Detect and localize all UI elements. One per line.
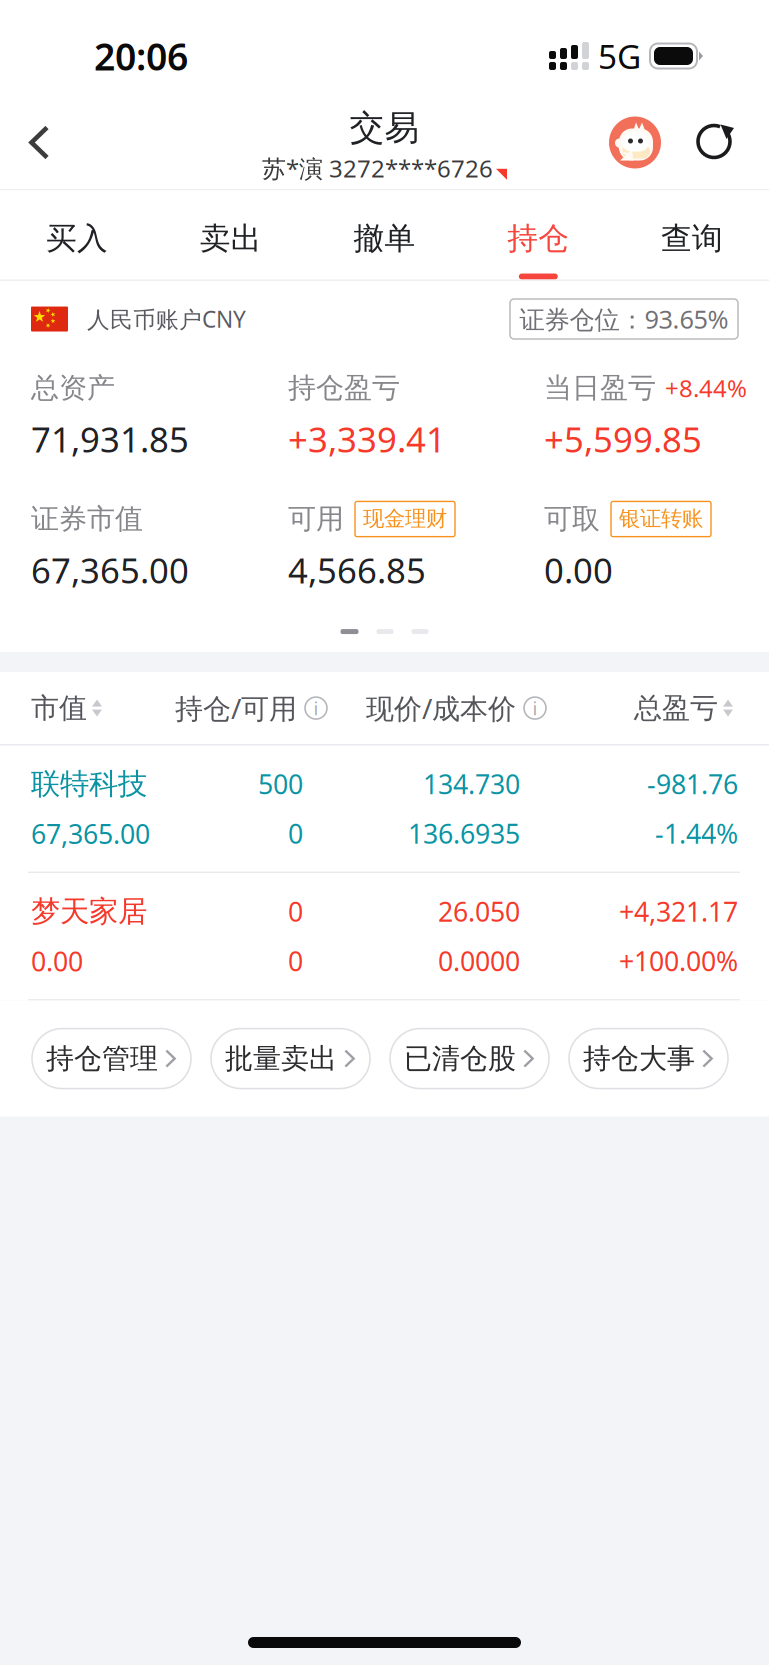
staticText: 现金理财 xyxy=(363,505,447,532)
staticText: 当日盈亏 xyxy=(544,371,656,405)
button[interactable]: 刷新 xyxy=(679,100,751,184)
button[interactable]: 买入 xyxy=(0,190,154,279)
button[interactable]: 持仓大事 xyxy=(569,1029,728,1089)
staticText: 0 xyxy=(288,894,303,929)
staticText: 梦天家居 xyxy=(31,893,147,929)
button[interactable]: 查询 xyxy=(615,190,769,279)
staticText: 136.6935 xyxy=(408,816,520,851)
staticText: 5G xyxy=(598,34,641,78)
staticText: 20:06 xyxy=(94,31,188,81)
button[interactable]: 证券仓位：93.65% xyxy=(510,299,738,339)
staticText: 卖出 xyxy=(200,220,262,257)
button[interactable]: 持仓/可用 xyxy=(0,672,327,744)
button[interactable]: 持仓管理 xyxy=(32,1029,191,1089)
button[interactable]: 返回 xyxy=(6,100,72,184)
staticText: 26.050 xyxy=(438,894,520,929)
staticText: 查询 xyxy=(661,220,723,257)
staticText: 0.00 xyxy=(544,547,613,593)
button[interactable]: 已清仓股 xyxy=(390,1029,549,1089)
staticText: -981.76 xyxy=(647,766,738,802)
staticText: 批量卖出 xyxy=(225,1041,337,1076)
staticText: 证券市值 xyxy=(31,502,143,536)
staticText: 500 xyxy=(258,766,303,802)
staticText: i xyxy=(532,696,537,720)
staticText: 联特科技 xyxy=(31,766,147,802)
button[interactable]: 联特科技 xyxy=(0,746,769,872)
staticText: 0 xyxy=(288,816,303,851)
staticText: +5,599.85 xyxy=(544,416,702,462)
button[interactable]: 市值 xyxy=(0,672,102,744)
staticText: 0 xyxy=(288,943,303,978)
staticText: 持仓/可用 xyxy=(175,689,297,727)
staticText: 现价/成本价 xyxy=(366,689,516,727)
button[interactable]: 现价/成本价 xyxy=(0,672,546,744)
button[interactable]: 卖出 xyxy=(154,190,308,279)
staticText: 总盈亏 xyxy=(634,691,718,725)
staticText: 人民币账户CNY xyxy=(87,304,246,334)
staticText: 持仓管理 xyxy=(46,1041,158,1076)
staticText: +8.44% xyxy=(665,372,747,404)
staticText: +3,339.41 xyxy=(288,416,446,462)
staticText: 持仓大事 xyxy=(583,1041,695,1076)
staticText: 4,566.85 xyxy=(288,547,426,593)
staticText: 银证转账 xyxy=(619,505,703,532)
button[interactable]: 持仓 xyxy=(461,190,615,279)
staticText: 证券仓位：93.65% xyxy=(519,302,728,336)
button[interactable]: 总盈亏 xyxy=(0,672,733,744)
staticText: 0.00 xyxy=(31,943,83,979)
staticText: 67,365.00 xyxy=(31,816,150,851)
button[interactable]: 客服 xyxy=(599,100,671,184)
staticText: -1.44% xyxy=(655,816,738,851)
staticText: 交易 xyxy=(349,107,419,149)
staticText: 撤单 xyxy=(353,220,415,257)
staticText: 持仓 xyxy=(507,220,569,257)
staticText: +100.00% xyxy=(619,943,738,978)
staticText: 可取 xyxy=(544,502,600,536)
staticText: 134.730 xyxy=(423,766,520,802)
staticText: 买入 xyxy=(46,220,108,257)
staticText: 已清仓股 xyxy=(404,1041,516,1076)
staticText: 市值 xyxy=(31,691,87,725)
staticText: 67,365.00 xyxy=(31,547,189,593)
button[interactable]: 批量卖出 xyxy=(211,1029,370,1089)
staticText: 71,931.85 xyxy=(31,416,189,462)
button[interactable]: 梦天家居 xyxy=(0,873,769,999)
staticText: 可用 xyxy=(288,502,344,536)
staticText: 持仓盈亏 xyxy=(288,371,400,405)
button[interactable]: 撤单 xyxy=(308,190,461,279)
staticText: i xyxy=(313,696,318,720)
staticText: 0.0000 xyxy=(438,943,520,978)
staticText: +4,321.17 xyxy=(619,894,738,929)
staticText: 苏*演 3272****6726 xyxy=(262,152,493,184)
staticText: 总资产 xyxy=(31,371,115,405)
